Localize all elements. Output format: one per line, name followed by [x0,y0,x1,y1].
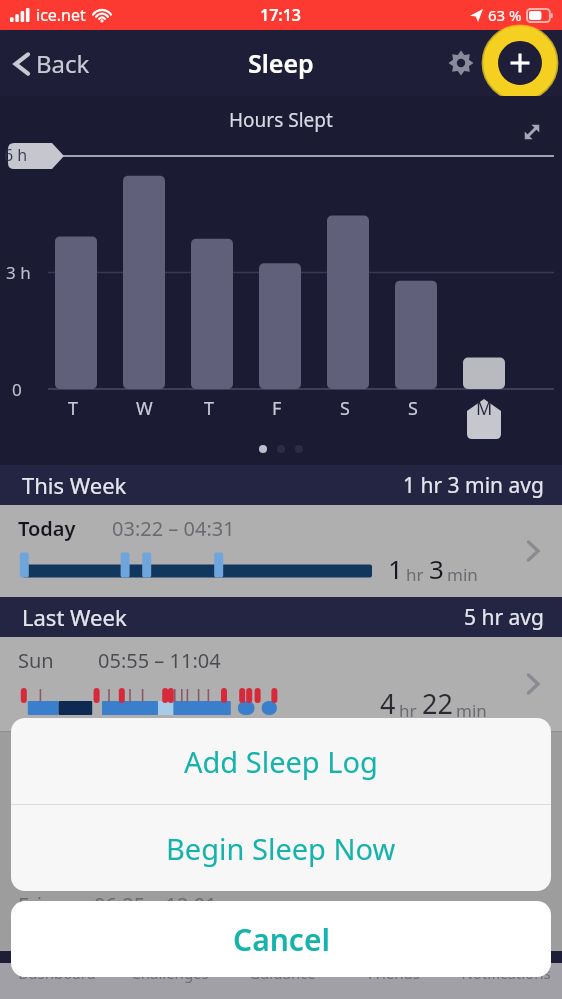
staticText: hr [399,699,417,722]
staticText: 4 [380,685,396,722]
button[interactable]: Back [12,47,98,80]
staticText: This Week [22,470,127,500]
button[interactable]: Today [0,505,562,597]
staticText: Hours Slept [229,107,333,133]
button[interactable]: Begin Sleep Now [11,805,551,891]
staticText: Last Week [22,602,127,632]
staticText: Begin Sleep Now [166,829,396,868]
staticText: S [408,396,418,421]
staticText: Add Sleep Log [184,742,378,781]
staticText: 03:22 – 04:31 [112,515,235,542]
staticText: 0 [12,378,22,401]
staticText: 3 h [6,261,31,284]
staticText: 1 [388,551,403,586]
staticText: W [136,396,153,421]
button[interactable]: Add [492,35,548,91]
button[interactable]: Dashboard [0,963,113,999]
staticText: M [476,396,493,421]
staticText: T [68,396,79,421]
staticText: min [447,563,478,586]
staticText: Friends [368,963,420,983]
staticText: 05:55 – 11:04 [98,647,221,674]
staticText: Sun [18,647,54,674]
staticText: Challenges [131,963,209,983]
staticText: Guidance [249,963,316,983]
staticText: Notifications [461,963,551,983]
button[interactable]: Friends [338,963,450,999]
staticText: Fri [18,891,42,918]
staticText: 04:46 – 11:03 [96,737,219,764]
staticText: 22 [422,685,453,722]
staticText: 1 hr 3 min avg [403,471,544,500]
staticText: min [456,699,487,722]
button[interactable]: Expand chart [514,114,550,150]
staticText: 3 [429,551,444,586]
staticText: ice.net [36,4,86,26]
button[interactable]: Cancel [11,901,551,977]
staticText: 17:13 [260,4,302,26]
staticText: 6 h [4,144,28,166]
staticText: 5 hr avg [464,603,544,632]
button[interactable]: Settings [440,42,482,84]
staticText: 63 % [488,5,522,25]
staticText: Dashboard [18,963,96,983]
staticText: 06:25 – 12:01 [94,891,217,918]
button[interactable]: Sun [0,637,562,731]
staticText: S [340,396,350,421]
staticText: Today [18,515,76,542]
button[interactable]: Add Sleep Log [11,718,551,804]
button[interactable]: Notifications [450,963,562,999]
staticText: Cancel [233,919,330,960]
button[interactable]: Challenges [113,963,226,999]
staticText: Back [36,47,90,80]
staticText: hr [406,563,424,586]
staticText: Sleep [248,46,314,80]
staticText: F [272,396,282,421]
button[interactable]: Guidance [226,963,338,999]
staticText: T [204,396,215,421]
